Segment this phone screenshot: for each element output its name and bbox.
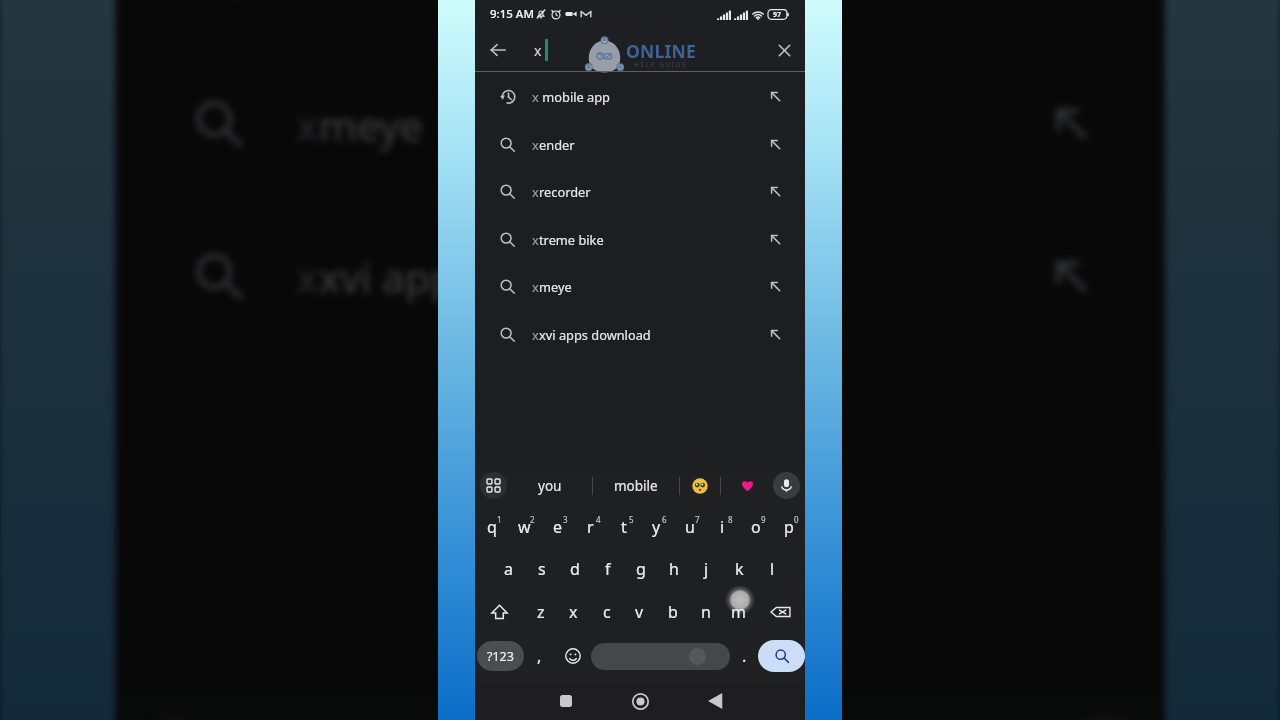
button[interactable]: j [690, 548, 723, 590]
button[interactable]: p [772, 506, 805, 548]
staticText: x [534, 41, 542, 60]
staticText: meye [539, 278, 572, 295]
staticText: ?123 [487, 648, 514, 665]
button[interactable]: b [656, 590, 689, 634]
button[interactable]: , [524, 634, 554, 678]
staticText: xvi apps download [539, 326, 651, 343]
button[interactable]: x [557, 590, 590, 634]
staticText: you [538, 477, 562, 495]
staticText: x [532, 326, 539, 343]
staticText: t [621, 516, 627, 538]
staticText: w [518, 516, 531, 538]
button[interactable]: o [739, 506, 772, 548]
button[interactable]: Voice input [773, 472, 800, 499]
button[interactable]: t [607, 506, 640, 548]
staticText: ender [539, 136, 575, 153]
button[interactable]: g [624, 548, 657, 590]
button[interactable]: . [730, 634, 758, 678]
staticText: x [569, 601, 578, 623]
button[interactable]: l [756, 548, 789, 590]
button[interactable]: x [115, 198, 1165, 351]
staticText: 9 [761, 514, 766, 525]
button[interactable]: k [723, 548, 756, 590]
button[interactable]: d [558, 548, 591, 590]
button[interactable]: s [525, 548, 558, 590]
button[interactable]: Toolbar [480, 472, 507, 499]
staticText: u [685, 516, 695, 538]
staticText: p [784, 516, 794, 538]
staticText: x [532, 136, 539, 153]
staticText: z [537, 601, 545, 623]
button[interactable]: Recents [528, 682, 603, 720]
staticText: g [636, 558, 646, 580]
staticText: n [701, 601, 711, 623]
staticText: 8 [728, 514, 733, 525]
button[interactable]: v [623, 590, 656, 634]
button[interactable]: a [491, 548, 525, 590]
staticText: v [635, 601, 644, 623]
button[interactable]: ?123 [477, 641, 524, 671]
button[interactable]: u [673, 506, 706, 548]
staticText: h [669, 558, 679, 580]
button[interactable]: Space [591, 643, 730, 670]
staticText: xvi apps download [319, 249, 675, 303]
button[interactable]: n [689, 590, 722, 634]
staticText: q [487, 516, 497, 538]
staticText: b [668, 601, 678, 623]
staticText: 4 [596, 514, 601, 525]
button[interactable]: x [475, 72, 805, 120]
button[interactable]: c [590, 590, 623, 634]
staticText: 2 [530, 514, 535, 525]
button[interactable]: f [591, 548, 624, 590]
staticText: treme bike [539, 231, 604, 248]
staticText: 7 [695, 514, 700, 525]
button[interactable]: z [524, 590, 557, 634]
staticText: x [297, 249, 319, 303]
staticText: m [731, 601, 746, 623]
staticText: x [532, 183, 539, 200]
button[interactable]: x [475, 310, 805, 358]
button[interactable]: i [706, 506, 739, 548]
staticText: o [751, 516, 761, 538]
button[interactable]: Search [758, 640, 805, 672]
button[interactable]: y [640, 506, 673, 548]
button[interactable]: x [115, 0, 1165, 48]
staticText: y [652, 516, 661, 538]
staticText: x [532, 88, 539, 105]
button[interactable]: Emoji [554, 634, 591, 678]
button[interactable]: Home [603, 682, 678, 720]
button[interactable]: r [574, 506, 607, 548]
staticText: 97 [773, 10, 782, 20]
button[interactable]: Shift [475, 590, 524, 634]
button[interactable]: Backspace [755, 590, 805, 634]
button[interactable]: Back [678, 682, 753, 720]
staticText: s [538, 558, 546, 580]
staticText: 3 [563, 514, 568, 525]
button[interactable]: e [541, 506, 574, 548]
staticText: , [537, 645, 542, 667]
staticText: . [742, 645, 747, 667]
staticText: 1 [497, 514, 502, 525]
button[interactable]: x [475, 168, 805, 215]
staticText: mobile app [539, 88, 610, 105]
button[interactable]: m [722, 590, 755, 634]
staticText: treme bike [319, 0, 525, 1]
button[interactable]: x [475, 215, 805, 263]
staticText: a [504, 558, 513, 580]
button[interactable]: x [475, 120, 805, 168]
button[interactable]: x [475, 263, 805, 310]
staticText: 6 [662, 514, 667, 525]
button[interactable]: q [475, 506, 508, 548]
button[interactable]: Clear [770, 36, 798, 64]
button[interactable]: Back [484, 36, 512, 64]
staticText: c [603, 601, 611, 623]
staticText: i [720, 516, 725, 538]
button[interactable]: w [508, 506, 541, 548]
button[interactable]: h [657, 548, 690, 590]
button[interactable]: x [115, 48, 1165, 198]
staticText: r [587, 516, 594, 538]
staticText: x [532, 231, 539, 248]
